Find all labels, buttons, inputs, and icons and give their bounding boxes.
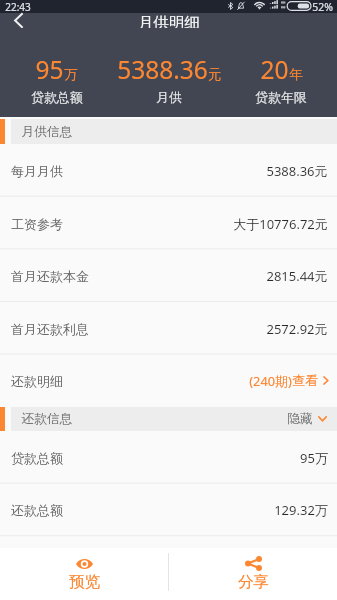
staticText: 贷款总额 (31, 90, 83, 106)
staticText: 2572.92元 (266, 320, 328, 338)
staticText: 还款信息 (21, 411, 73, 427)
button[interactable]: 隐藏 (277, 407, 337, 431)
staticText: 贷款总额 (11, 450, 63, 466)
staticText: 还款总额 (11, 502, 63, 518)
staticText: 大于10776.72元 (233, 215, 328, 233)
button[interactable]: Back (0, 13, 36, 28)
staticText: 年 (289, 66, 303, 83)
staticText: 95万 (300, 449, 328, 467)
staticText: 预览 (69, 572, 100, 592)
staticText: 首月还款本金 (11, 268, 89, 284)
button[interactable]: 工资参考 (0, 197, 337, 250)
button[interactable]: 每月月供 (0, 144, 337, 197)
staticText: 20 (260, 53, 289, 86)
button[interactable]: 还款明细 (0, 354, 337, 407)
staticText: 月供信息 (21, 124, 73, 140)
staticText: 分享 (238, 572, 269, 592)
staticText: 隐藏 (287, 411, 313, 427)
button[interactable]: 首月还款本金 (0, 249, 337, 302)
staticText: 5388.36元 (266, 162, 328, 180)
button[interactable]: Preview (0, 548, 168, 600)
staticText: (240期) (249, 372, 292, 389)
staticText: 5388.36 (117, 53, 208, 86)
staticText: 工资参考 (11, 216, 63, 232)
staticText: 查看 (292, 373, 318, 389)
staticText: 贷款年限 (255, 90, 307, 106)
staticText: 元 (208, 66, 222, 83)
staticText: 万 (64, 66, 78, 83)
staticText: 22:43 (5, 0, 31, 13)
staticText: 95 (35, 53, 64, 86)
staticText: 129.32万 (274, 501, 328, 519)
button[interactable]: Share (169, 548, 337, 600)
staticText: 月供明细 (138, 13, 200, 28)
button[interactable]: 首月还款利息 (0, 302, 337, 355)
staticText: 月供 (156, 90, 182, 106)
staticText: 首月还款利息 (11, 321, 89, 337)
staticText: 2815.44元 (266, 267, 328, 285)
button[interactable]: 还款总额 (0, 483, 337, 536)
button[interactable]: 贷款总额 (0, 431, 337, 484)
staticText: 52% (312, 0, 333, 13)
staticText: 还款明细 (11, 373, 63, 389)
staticText: 每月月供 (11, 163, 63, 179)
